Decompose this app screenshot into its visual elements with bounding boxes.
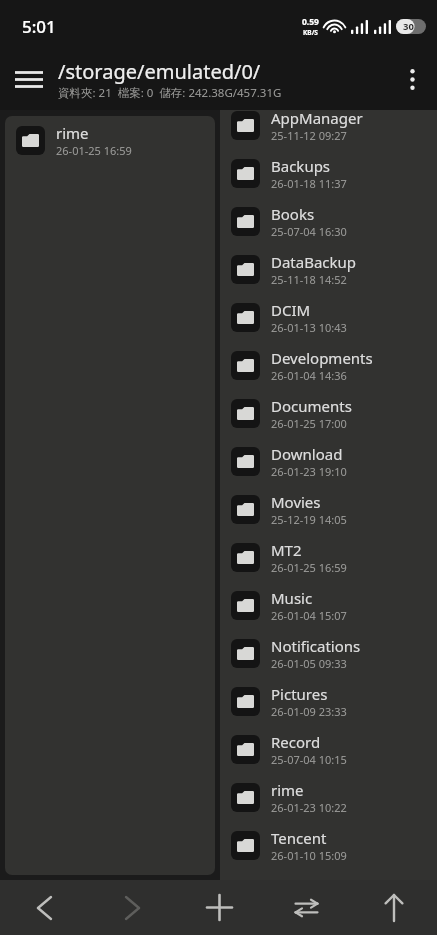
staticText: 25-12-19 14:05 — [271, 512, 347, 527]
staticText: Developments — [271, 348, 373, 368]
staticText: 25-11-12 09:27 — [271, 128, 347, 143]
button[interactable]: Download — [220, 437, 437, 485]
staticText: 25-07-04 16:30 — [271, 224, 347, 239]
button[interactable]: Backups — [220, 149, 437, 197]
staticText: Download — [271, 444, 343, 464]
button[interactable]: Developments — [220, 341, 437, 389]
staticText: 26-01-05 09:33 — [271, 656, 347, 671]
button[interactable]: New — [176, 880, 263, 935]
staticText: 26-01-13 10:43 — [271, 320, 347, 335]
button[interactable]: Record — [220, 725, 437, 773]
staticText: DCIM — [271, 300, 311, 320]
staticText: 26-01-25 16:59 — [271, 560, 347, 575]
staticText: rime — [56, 123, 89, 143]
button[interactable]: DCIM — [220, 293, 437, 341]
staticText: KB/S — [303, 28, 318, 37]
staticText: 0.59 — [302, 16, 319, 28]
staticText: 26-01-10 15:09 — [271, 848, 347, 863]
staticText: Backups — [271, 156, 331, 176]
staticText: 5:01 — [22, 15, 56, 38]
staticText: 26-01-04 14:36 — [271, 368, 347, 383]
button[interactable]: Music — [220, 581, 437, 629]
staticText: rime — [271, 780, 304, 800]
button[interactable]: Pictures — [220, 677, 437, 725]
staticText: Tencent — [271, 828, 327, 848]
staticText: 26-01-09 23:33 — [271, 704, 347, 719]
staticText: 26-01-23 19:10 — [271, 464, 347, 479]
button[interactable]: Books — [220, 197, 437, 245]
button[interactable]: DataBackup — [220, 245, 437, 293]
staticText: 26-01-25 16:59 — [56, 143, 132, 158]
staticText: Movies — [271, 492, 321, 512]
staticText: MT2 — [271, 540, 302, 560]
staticText: Notifications — [271, 636, 361, 656]
staticText: Record — [271, 732, 321, 752]
staticText: 25-07-04 10:15 — [271, 752, 347, 767]
button[interactable]: rime — [220, 773, 437, 821]
staticText: 26-01-25 17:00 — [271, 416, 347, 431]
staticText: 26-01-18 11:37 — [271, 176, 347, 191]
button[interactable]: rime — [5, 116, 215, 164]
staticText: Pictures — [271, 684, 328, 704]
button[interactable]: Movies — [220, 485, 437, 533]
button[interactable]: Documents — [220, 389, 437, 437]
button[interactable]: AppManager — [220, 101, 437, 149]
button[interactable]: Menu — [0, 50, 58, 108]
staticText: 資料夾: 21 檔案: 0 儲存: 242.38G/457.31G — [58, 85, 282, 101]
button[interactable]: Tencent — [220, 821, 437, 869]
staticText: 30 — [403, 20, 414, 33]
staticText: Books — [271, 204, 315, 224]
button[interactable]: Up one level — [350, 880, 437, 935]
button[interactable]: More options — [387, 54, 437, 104]
button[interactable]: Back — [0, 880, 88, 935]
button[interactable]: Forward — [88, 880, 176, 935]
staticText: AppManager — [271, 108, 363, 128]
staticText: Music — [271, 588, 313, 608]
staticText: DataBackup — [271, 252, 357, 272]
button[interactable]: MT2 — [220, 533, 437, 581]
staticText: 26-01-04 15:07 — [271, 608, 347, 623]
staticText: 25-11-18 14:52 — [271, 272, 347, 287]
staticText: /storage/emulated/0/ — [58, 58, 261, 85]
staticText: Documents — [271, 396, 352, 416]
button[interactable]: Transfer — [263, 880, 350, 935]
button[interactable]: Notifications — [220, 629, 437, 677]
staticText: 26-01-23 10:22 — [271, 800, 347, 815]
